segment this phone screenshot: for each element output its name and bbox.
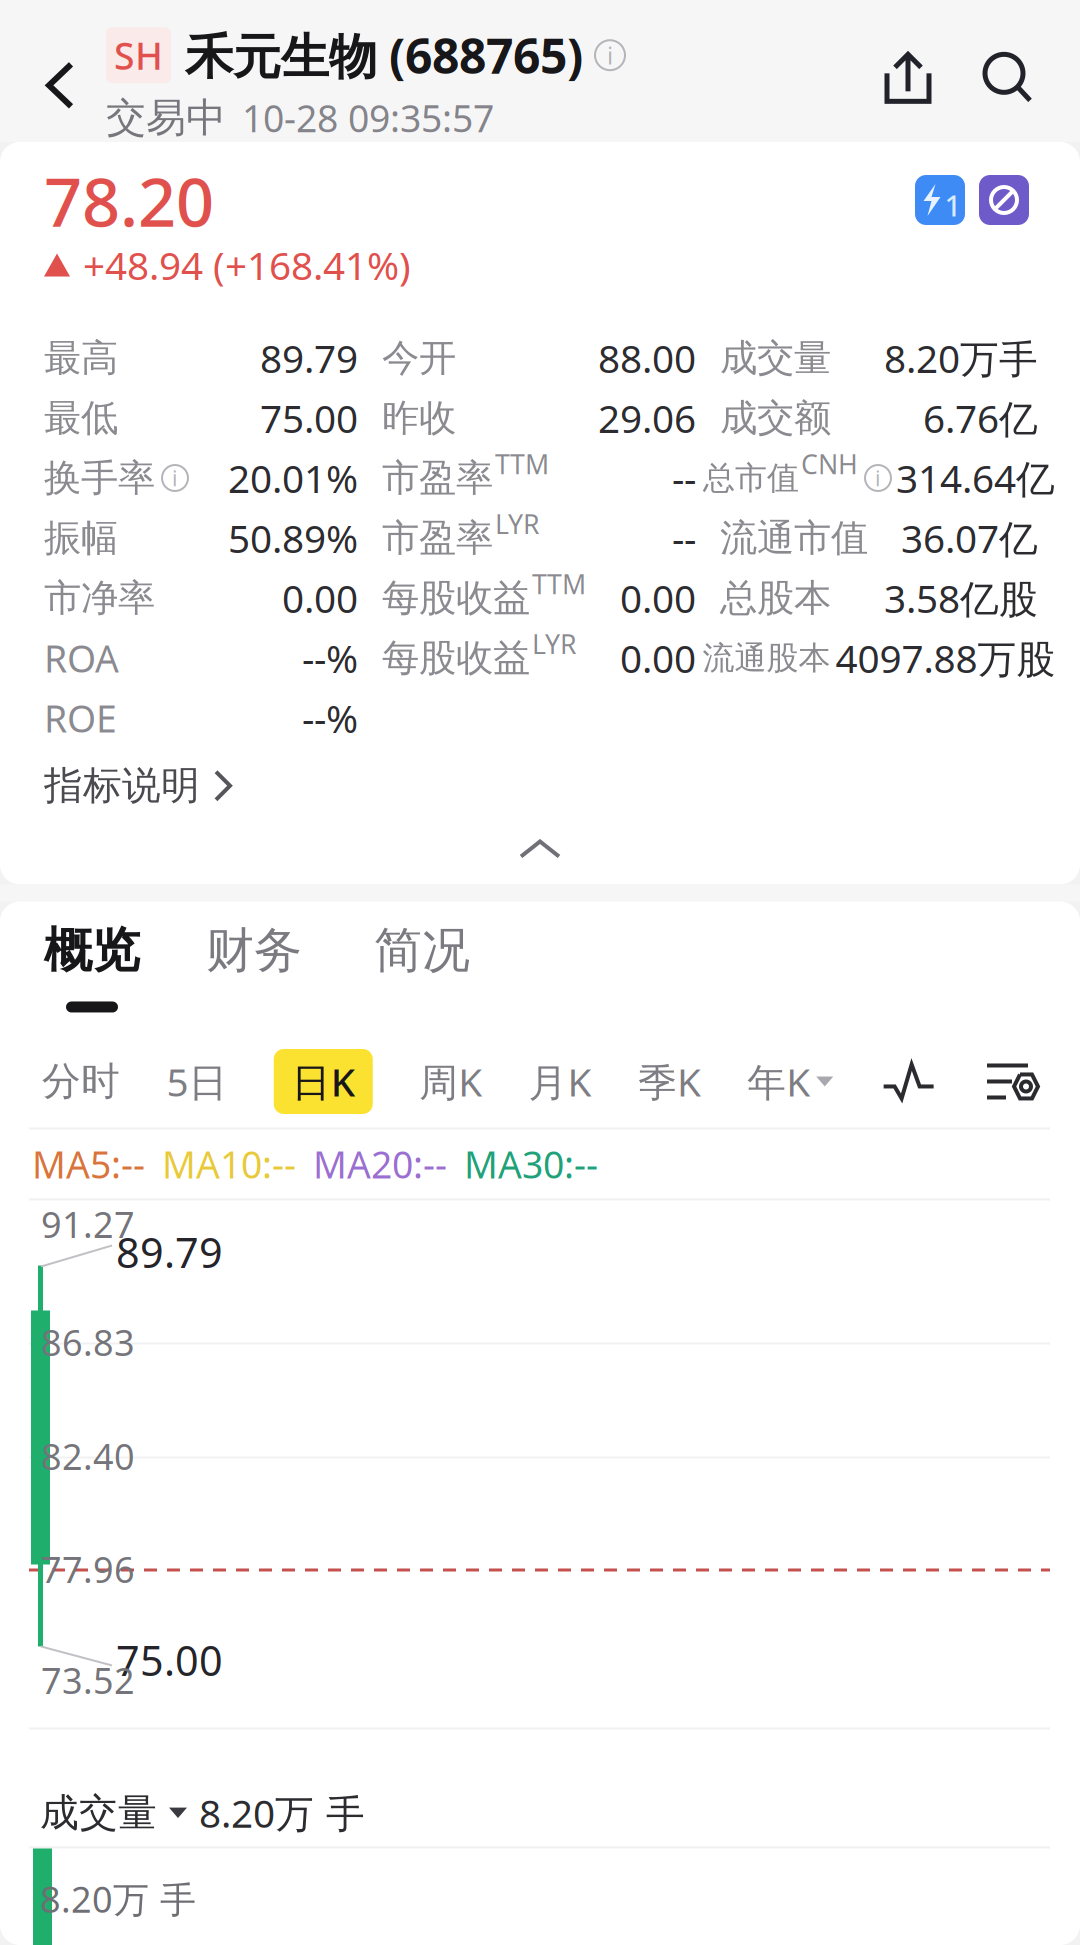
- staticText: 市盈率: [382, 515, 493, 561]
- staticText: MA30:--: [464, 1139, 598, 1189]
- staticText: 每股收益: [382, 575, 530, 621]
- staticText: 交易中: [106, 93, 226, 142]
- staticText: 市净率: [44, 575, 155, 621]
- staticText: 日K: [292, 1056, 355, 1107]
- staticText: 1: [944, 185, 961, 224]
- staticText: 78.20: [44, 157, 214, 245]
- staticText: 今开: [382, 335, 456, 381]
- button[interactable]: Search: [958, 0, 1058, 141]
- staticText: 季K: [638, 1056, 701, 1107]
- staticText: ROA: [44, 633, 119, 683]
- staticText: 6.76亿: [923, 392, 1038, 444]
- staticText: 3.58亿股: [884, 572, 1038, 624]
- staticText: LYR: [532, 626, 577, 662]
- staticText: CNH: [801, 446, 858, 482]
- staticText: 市盈率: [382, 455, 493, 501]
- staticText: 换手率: [44, 455, 155, 501]
- staticText: 概览: [44, 921, 140, 980]
- staticText: 4097.88万股: [835, 632, 1055, 684]
- staticText: 73.52: [41, 1656, 135, 1704]
- button[interactable]: 5日: [166, 1049, 227, 1114]
- staticText: 0.00: [620, 632, 696, 684]
- staticText: 简况: [374, 921, 470, 980]
- staticText: 成交量: [40, 1789, 157, 1837]
- staticText: 77.96: [41, 1545, 135, 1593]
- staticText: 89.79: [260, 332, 358, 384]
- staticText: TTM: [532, 566, 586, 602]
- button[interactable]: 日K: [274, 1049, 373, 1114]
- staticText: 总市值: [703, 458, 799, 498]
- button[interactable]: 财务: [168, 925, 340, 1012]
- button[interactable]: Indicators: [880, 1048, 938, 1114]
- staticText: MA10:--: [162, 1139, 296, 1189]
- staticText: i: [875, 464, 881, 492]
- button[interactable]: 年K: [747, 1049, 833, 1114]
- staticText: --%: [302, 692, 358, 744]
- staticText: MA5:--: [32, 1139, 145, 1189]
- staticText: 88.00: [598, 332, 696, 384]
- staticText: 36.07亿: [901, 512, 1038, 564]
- staticText: 82.40: [41, 1432, 135, 1480]
- staticText: 振幅: [44, 515, 118, 561]
- staticText: i: [607, 39, 613, 71]
- staticText: 分时: [42, 1058, 120, 1105]
- staticText: 总股本: [720, 575, 831, 621]
- staticText: 昨收: [382, 395, 456, 441]
- staticText: 86.83: [41, 1318, 135, 1366]
- button[interactable]: 分时: [42, 1049, 120, 1114]
- button[interactable]: 指标说明: [0, 748, 1080, 815]
- staticText: 最低: [44, 395, 118, 441]
- staticText: i: [172, 464, 178, 492]
- button[interactable]: 月K: [528, 1049, 591, 1114]
- staticText: 流通市值: [720, 515, 868, 561]
- staticText: 8.20万 手: [199, 1787, 365, 1838]
- staticText: 年K: [747, 1056, 810, 1107]
- staticText: 成交额: [720, 395, 831, 441]
- staticText: 75.00: [116, 1633, 223, 1687]
- staticText: 91.27: [41, 1200, 135, 1248]
- staticText: 50.89%: [228, 512, 358, 564]
- staticText: 5日: [166, 1056, 227, 1107]
- button[interactable]: 周K: [419, 1049, 482, 1114]
- button[interactable]: 季K: [638, 1049, 701, 1114]
- button[interactable]: Back: [0, 0, 106, 141]
- staticText: 20.01%: [228, 452, 358, 504]
- staticText: SH: [114, 30, 163, 80]
- staticText: 314.64亿: [896, 452, 1055, 504]
- staticText: 每股收益: [382, 635, 530, 681]
- staticText: 0.00: [282, 572, 358, 624]
- button[interactable]: Collapse: [0, 815, 1080, 884]
- staticText: 75.00: [260, 392, 358, 444]
- staticText: MA20:--: [313, 1139, 447, 1189]
- staticText: 0.00: [620, 572, 696, 624]
- button[interactable]: 概览: [0, 925, 168, 1012]
- staticText: 禾元生物 (688765): [185, 23, 583, 87]
- staticText: 8.20万手: [884, 332, 1038, 384]
- staticText: TTM: [495, 446, 549, 482]
- staticText: LYR: [495, 506, 540, 542]
- staticText: 流通股本: [702, 638, 830, 678]
- staticText: 最高: [44, 335, 118, 381]
- staticText: 周K: [419, 1056, 482, 1107]
- staticText: --%: [302, 632, 358, 684]
- staticText: 财务: [206, 921, 302, 980]
- staticText: ROE: [44, 693, 117, 743]
- staticText: 29.06: [598, 392, 696, 444]
- staticText: 成交量: [720, 335, 831, 381]
- staticText: --: [672, 452, 696, 504]
- staticText: +48.94 (+168.41%): [83, 239, 411, 291]
- staticText: 指标说明: [44, 762, 200, 809]
- staticText: 10-28 09:35:57: [242, 93, 494, 143]
- button[interactable]: Share: [858, 0, 958, 141]
- button[interactable]: 简况: [340, 925, 504, 1012]
- staticText: 月K: [528, 1056, 591, 1107]
- button[interactable]: Chart settings: [984, 1048, 1042, 1114]
- staticText: 8.20万 手: [40, 1875, 196, 1923]
- staticText: 89.79: [116, 1225, 223, 1279]
- staticText: --: [672, 512, 696, 564]
